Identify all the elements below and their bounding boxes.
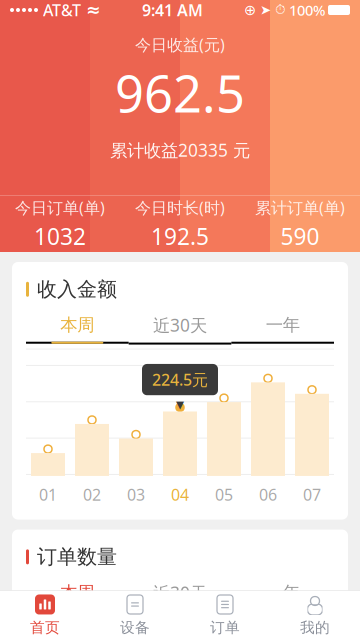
staticText: 收入金额 — [37, 277, 117, 302]
staticText: ⊕ — [244, 2, 256, 18]
button[interactable]: 近30天 — [129, 314, 231, 349]
staticText: 订单 — [210, 618, 240, 636]
staticText: 962.5 — [115, 59, 245, 126]
staticText: 590 — [280, 221, 319, 251]
staticText: 192.5 — [151, 221, 209, 251]
staticText: ➤ — [260, 2, 271, 17]
staticText: 近30天 — [153, 314, 207, 337]
staticText: 一年 — [266, 582, 300, 603]
button[interactable]: 本周 — [26, 314, 129, 348]
staticText: 06 — [259, 484, 277, 505]
staticText: 今日订单(单) — [15, 197, 105, 218]
staticText: 04 — [171, 484, 189, 505]
staticText: 02 — [83, 484, 101, 505]
button[interactable]: 设备 — [90, 591, 180, 639]
staticText: 03 — [127, 484, 145, 505]
staticText: ⏱ — [275, 3, 285, 16]
staticText: 今日时长(时) — [135, 197, 225, 218]
staticText: 1032 — [34, 221, 86, 251]
staticText: 100% — [289, 0, 325, 20]
staticText: AT&T — [43, 0, 81, 21]
staticText: 累计收益20335 元 — [110, 138, 250, 161]
button[interactable]: 本周 — [26, 582, 129, 615]
button[interactable]: 首页 — [0, 591, 90, 639]
staticText: 05 — [215, 484, 233, 505]
staticText: 本周 — [60, 582, 94, 603]
staticText: 我的 — [300, 618, 330, 636]
staticText: 01 — [39, 484, 57, 505]
button[interactable]: 一年 — [231, 314, 334, 348]
staticText: 首页 — [30, 618, 60, 636]
staticText: 累计订单(单) — [255, 197, 345, 218]
staticText: ≈ — [86, 0, 101, 20]
staticText: 224.5元 — [152, 369, 208, 390]
staticText: 设备 — [120, 618, 150, 636]
button[interactable]: 一年 — [231, 582, 334, 615]
button[interactable]: 我的 — [270, 591, 360, 639]
staticText: 9:41 AM — [142, 0, 203, 21]
staticText: 一年 — [266, 314, 300, 336]
staticText: 订单数量 — [37, 545, 117, 569]
staticText: 本周 — [60, 314, 94, 336]
button[interactable]: 订单 — [180, 591, 270, 639]
staticText: 今日收益(元) — [135, 34, 225, 55]
staticText: ▾ — [176, 395, 184, 413]
staticText: 07 — [303, 484, 321, 505]
button[interactable]: 近30天 — [129, 581, 231, 616]
staticText: 近30天 — [153, 581, 207, 604]
